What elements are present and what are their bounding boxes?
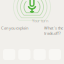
staticText: What's the trade-off?: [44, 25, 63, 36]
staticText: Can you explain: [1, 25, 28, 31]
staticText: Your turn: [32, 18, 48, 23]
